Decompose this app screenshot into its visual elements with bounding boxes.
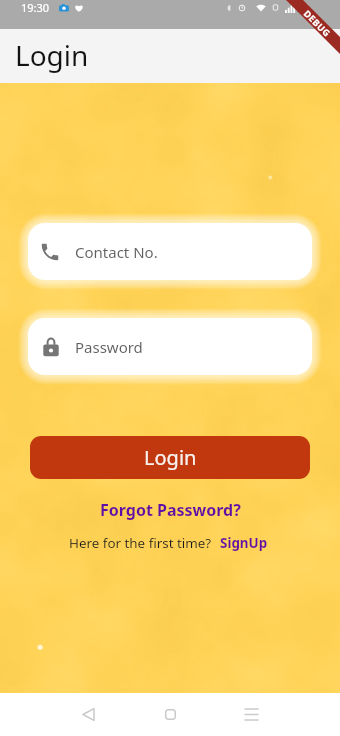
button[interactable]: Contact No. [28,223,312,280]
button[interactable]: Recent apps [229,693,273,736]
staticText: Password [75,337,143,357]
staticText: Login [144,444,197,471]
button[interactable]: Back [66,693,110,736]
staticText: DEBUG [302,7,333,39]
button[interactable]: Forgot Password? [94,496,247,524]
staticText: Login [15,36,89,74]
button[interactable]: Home [148,693,192,736]
button[interactable]: Login [30,436,310,479]
staticText: Here for the first time? [69,534,212,552]
button[interactable]: SignUp [217,532,271,554]
staticText: 19:30 [21,0,50,15]
staticText: Contact No. [75,242,158,262]
button[interactable]: Password [28,318,312,375]
